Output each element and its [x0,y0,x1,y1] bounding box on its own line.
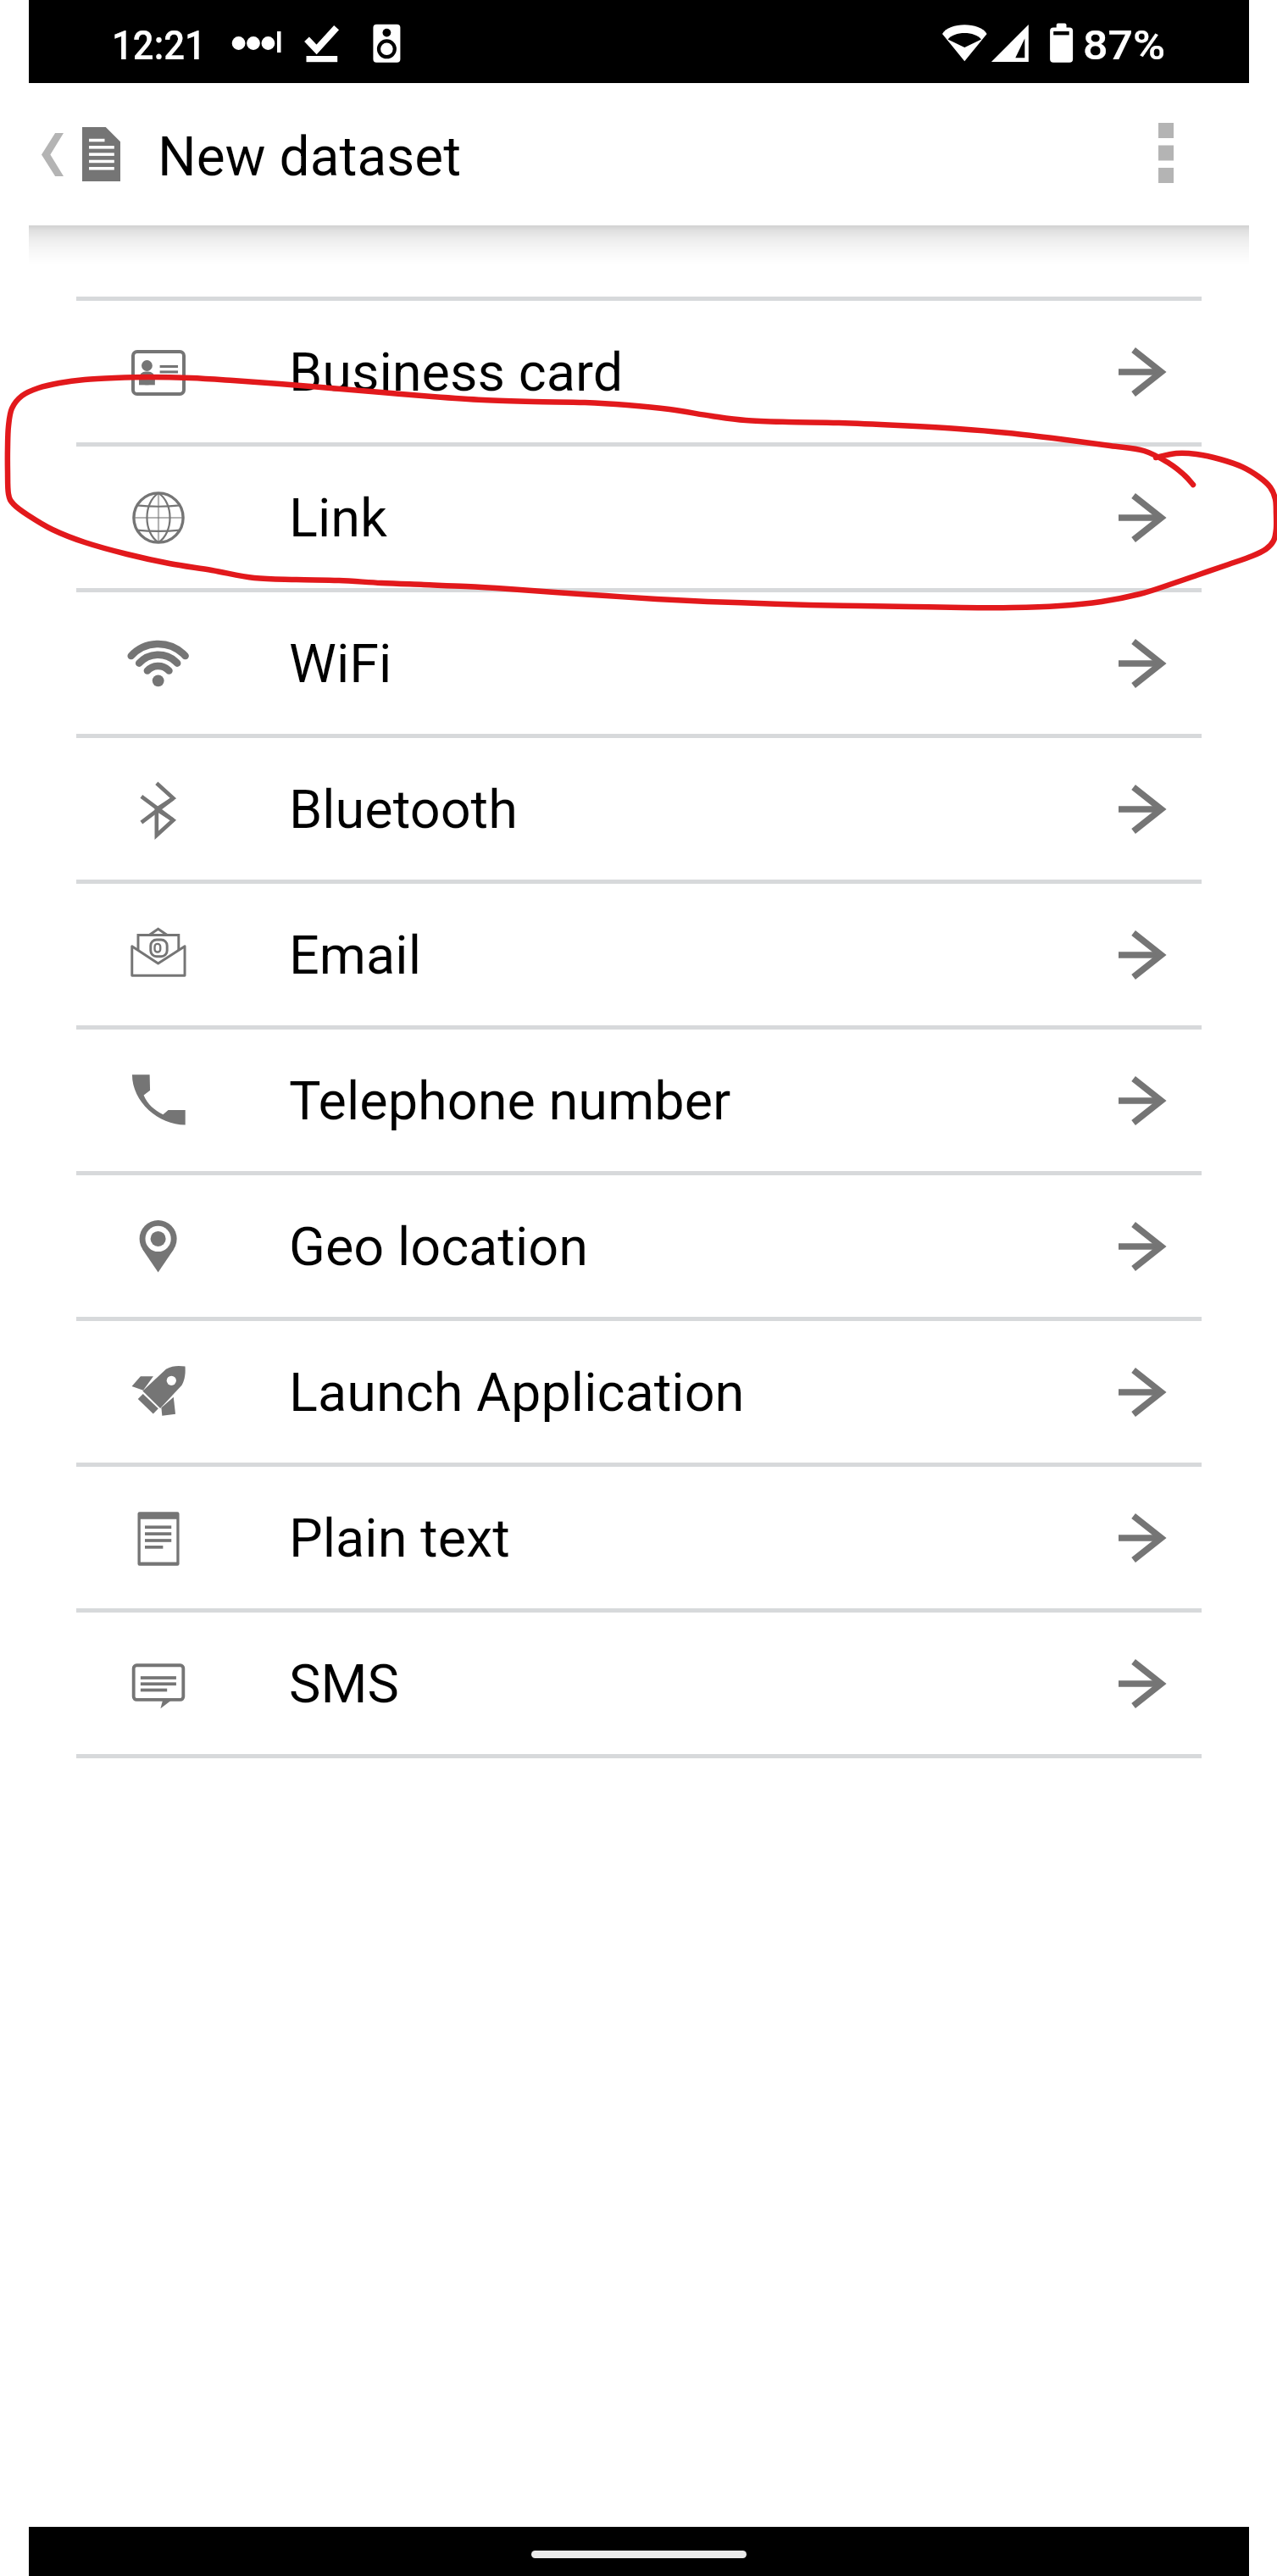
button[interactable]: Launch Application [29,1322,1249,1463]
staticText: Link [289,487,387,550]
button[interactable]: Back [6,108,99,201]
button[interactable]: Bluetooth [29,739,1249,880]
button[interactable]: Link [29,447,1249,588]
button[interactable]: WiFi [29,593,1249,734]
button[interactable]: Telephone number [29,1030,1249,1171]
button[interactable]: Geo location [29,1176,1249,1317]
staticText: Bluetooth [289,779,518,841]
staticText: 87% [1083,21,1165,69]
staticText: Email [289,924,421,987]
staticText: Telephone number [289,1070,731,1133]
staticText: New dataset [158,125,462,189]
button[interactable]: Business card [29,302,1249,442]
staticText: Business card [289,341,624,404]
button[interactable]: SMS [29,1613,1249,1754]
staticText: Geo location [289,1216,589,1279]
button[interactable]: Plain text [29,1468,1249,1608]
staticText: Plain text [289,1507,510,1570]
staticText: SMS [289,1653,399,1716]
button[interactable]: Email [29,885,1249,1025]
button[interactable]: More options [1119,106,1213,199]
staticText: Launch Application [289,1362,745,1424]
staticText: 12:21 [112,21,206,69]
staticText: WiFi [289,633,392,696]
